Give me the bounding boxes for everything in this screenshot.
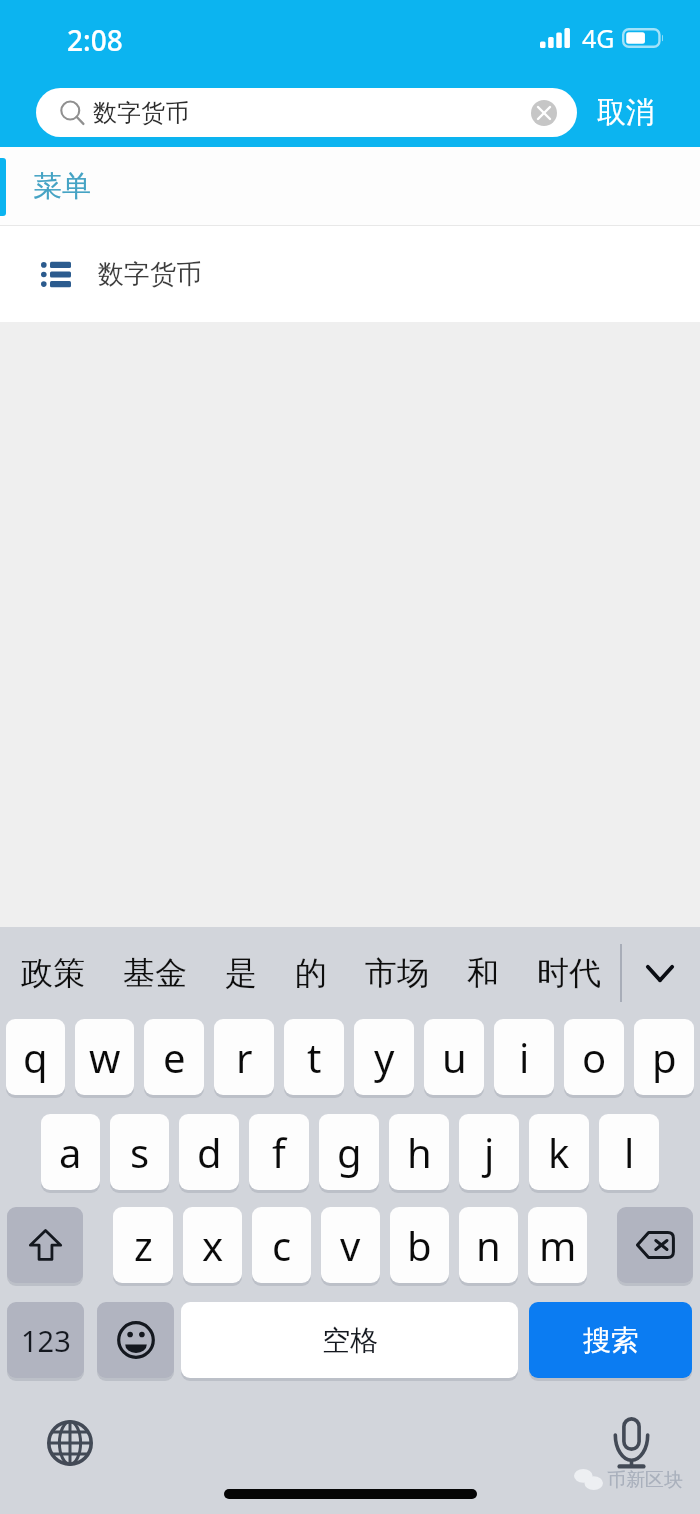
staticText: 时代 (537, 953, 601, 993)
button[interactable]: j (459, 1114, 519, 1190)
staticText: z (134, 1218, 153, 1272)
staticText: 4G (582, 21, 615, 55)
staticText: t (307, 1030, 322, 1084)
button[interactable]: 数字货币 (36, 88, 577, 137)
staticText: h (407, 1125, 432, 1179)
staticText: 币新区块 (607, 1468, 683, 1492)
button[interactable]: g (319, 1114, 379, 1190)
button[interactable]: p (634, 1019, 694, 1095)
button[interactable]: w (75, 1019, 134, 1095)
button[interactable]: 基金 (104, 927, 206, 1019)
staticText: e (163, 1030, 186, 1084)
button[interactable]: f (249, 1114, 309, 1190)
button[interactable]: i (494, 1019, 554, 1095)
button[interactable]: t (284, 1019, 344, 1095)
button[interactable]: Switch keyboard language (47, 1420, 93, 1466)
button[interactable]: 市场 (346, 927, 448, 1019)
staticText: 数字货币 (93, 98, 189, 128)
staticText: o (582, 1030, 607, 1084)
button[interactable]: y (354, 1019, 414, 1095)
button[interactable]: 和 (448, 927, 518, 1019)
staticText: w (89, 1030, 121, 1084)
button[interactable]: u (424, 1019, 484, 1095)
button[interactable]: Backspace (617, 1207, 693, 1283)
staticText: p (652, 1030, 677, 1084)
button[interactable]: Emoji keyboard (97, 1302, 174, 1378)
staticText: f (272, 1125, 286, 1179)
button[interactable]: 搜索 (529, 1302, 692, 1378)
staticText: d (197, 1125, 222, 1179)
button[interactable]: Clear text (531, 100, 557, 126)
button[interactable]: 政策 (2, 927, 104, 1019)
button[interactable]: d (179, 1114, 239, 1190)
button[interactable]: k (529, 1114, 589, 1190)
button[interactable]: q (6, 1019, 65, 1095)
button[interactable]: 取消 (577, 87, 700, 137)
staticText: n (476, 1218, 501, 1272)
button[interactable]: x (183, 1207, 242, 1283)
staticText: 菜单 (33, 168, 91, 205)
button[interactable]: h (389, 1114, 449, 1190)
staticText: b (407, 1218, 432, 1272)
staticText: 2:08 (67, 21, 123, 59)
button[interactable]: a (41, 1114, 100, 1190)
button[interactable]: n (459, 1207, 518, 1283)
button[interactable]: Voice input (612, 1417, 651, 1471)
staticText: l (624, 1125, 635, 1179)
staticText: 搜索 (583, 1323, 639, 1358)
staticText: 的 (295, 953, 327, 993)
staticText: q (23, 1030, 48, 1084)
button[interactable]: m (528, 1207, 587, 1283)
staticText: 空格 (322, 1323, 378, 1358)
button[interactable]: e (144, 1019, 204, 1095)
button[interactable]: 的 (276, 927, 346, 1019)
staticText: m (539, 1218, 577, 1272)
staticText: r (236, 1030, 253, 1084)
button[interactable]: l (599, 1114, 659, 1190)
button[interactable]: 菜单 (0, 147, 700, 226)
button[interactable]: 123 (7, 1302, 84, 1378)
staticText: s (130, 1125, 150, 1179)
staticText: 政策 (21, 953, 85, 993)
staticText: v (340, 1218, 361, 1272)
button[interactable]: b (390, 1207, 449, 1283)
button[interactable]: Hide keyboard (622, 927, 698, 1019)
button[interactable]: r (214, 1019, 274, 1095)
button[interactable]: o (564, 1019, 624, 1095)
button[interactable]: 空格 (181, 1302, 518, 1378)
staticText: g (337, 1125, 362, 1179)
staticText: 数字货币 (98, 258, 202, 291)
staticText: 和 (467, 953, 499, 993)
staticText: i (519, 1030, 530, 1084)
button[interactable]: s (110, 1114, 169, 1190)
button[interactable]: z (113, 1207, 173, 1283)
button[interactable]: Shift (7, 1207, 83, 1283)
staticText: 取消 (597, 94, 655, 131)
staticText: j (484, 1125, 495, 1179)
staticText: 市场 (365, 953, 429, 993)
staticText: k (548, 1125, 570, 1179)
staticText: a (59, 1125, 82, 1179)
staticText: u (442, 1030, 467, 1084)
button[interactable]: 数字货币 (0, 226, 700, 322)
staticText: c (272, 1218, 292, 1272)
staticText: 是 (225, 953, 257, 993)
button[interactable]: 时代 (518, 927, 620, 1019)
staticText: y (374, 1030, 395, 1084)
button[interactable]: c (252, 1207, 311, 1283)
staticText: 基金 (123, 953, 187, 993)
staticText: 123 (21, 1321, 71, 1360)
button[interactable]: v (321, 1207, 380, 1283)
staticText: x (202, 1218, 224, 1272)
button[interactable]: 是 (206, 927, 276, 1019)
